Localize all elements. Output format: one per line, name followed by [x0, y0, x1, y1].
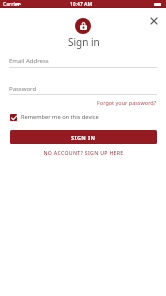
staticText: Sign in [68, 35, 100, 49]
staticText: Forgot your password? [97, 99, 157, 106]
staticText: NO ACCOUNT? SIGN UP HERE [43, 149, 124, 156]
button[interactable]: SIGN IN [10, 130, 157, 144]
button[interactable]: Remember me on this device [10, 113, 99, 121]
staticText: Email Address [9, 57, 49, 65]
button[interactable]: Forgot your password? [97, 99, 157, 106]
staticText: Remember me on this device [21, 113, 99, 121]
button[interactable]: NO ACCOUNT? SIGN UP HERE [41, 147, 126, 158]
staticText: Carrier [3, 1, 20, 8]
staticText: 10:47 AM [70, 1, 93, 8]
staticText: Password [9, 85, 37, 93]
button[interactable]: Close [147, 14, 161, 28]
staticText: SIGN IN [71, 134, 96, 141]
